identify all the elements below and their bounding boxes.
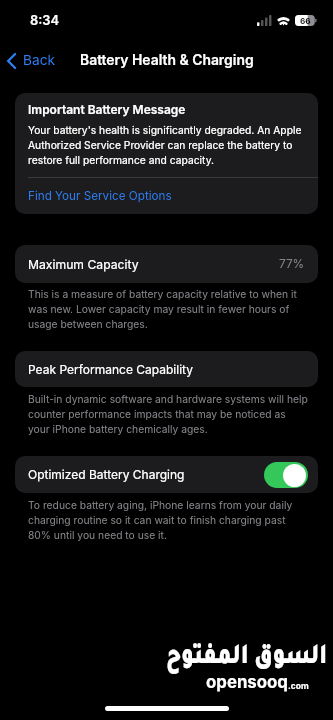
staticText: Built-in dynamic software and hardware s… (28, 393, 309, 436)
staticText: Maximum Capacity (28, 257, 139, 272)
staticText: To reduce battery aging, iPhone learns f… (28, 499, 309, 542)
staticText: 8:34 (30, 13, 60, 29)
button[interactable]: Back (0, 48, 63, 73)
staticText: opensooq (206, 672, 288, 692)
staticText: Find Your Service Options (28, 189, 172, 203)
button[interactable]: Peak Performance Capability (15, 351, 318, 387)
staticText: Optimized Battery Charging (28, 467, 185, 482)
staticText: Back (23, 52, 55, 69)
staticText: .com (288, 681, 309, 691)
button[interactable]: Optimized Battery Charging toggle (264, 462, 308, 488)
button[interactable]: Maximum Capacity (15, 245, 318, 283)
staticText: This is a measure of battery capacity re… (28, 288, 309, 331)
staticText: Peak Performance Capability (28, 362, 193, 377)
staticText: Battery Health & Charging (80, 52, 254, 69)
staticText: 66 (300, 16, 311, 26)
staticText: السوق المفتوح (166, 644, 328, 673)
button[interactable]: Find Your Service Options (15, 178, 318, 214)
staticText: 77% (279, 257, 305, 271)
staticText: Your battery's health is significantly d… (28, 124, 307, 166)
staticText: Important Battery Message (28, 102, 186, 117)
